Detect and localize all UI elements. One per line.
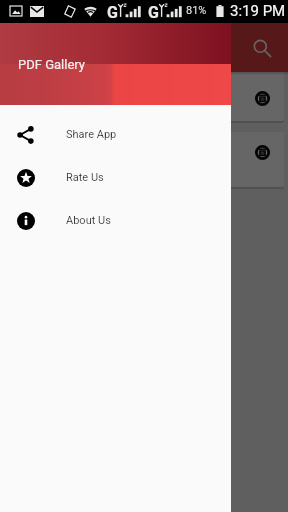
button[interactable] [4, 69, 284, 121]
button[interactable]: Share App [0, 113, 231, 156]
button[interactable] [4, 132, 284, 187]
button[interactable]: About Us [0, 199, 231, 242]
staticText: G [148, 3, 159, 22]
staticText: 3:19 PM [230, 2, 286, 20]
staticText: About Us [66, 214, 111, 227]
staticText: 81% [186, 4, 207, 17]
staticText: G [107, 3, 118, 22]
staticText: Share App [66, 128, 117, 141]
button[interactable]: Rate Us [0, 156, 231, 199]
staticText: Rate Us [66, 171, 104, 184]
button[interactable]: Search [242, 28, 282, 68]
staticText: PDF Gallery [18, 57, 85, 72]
